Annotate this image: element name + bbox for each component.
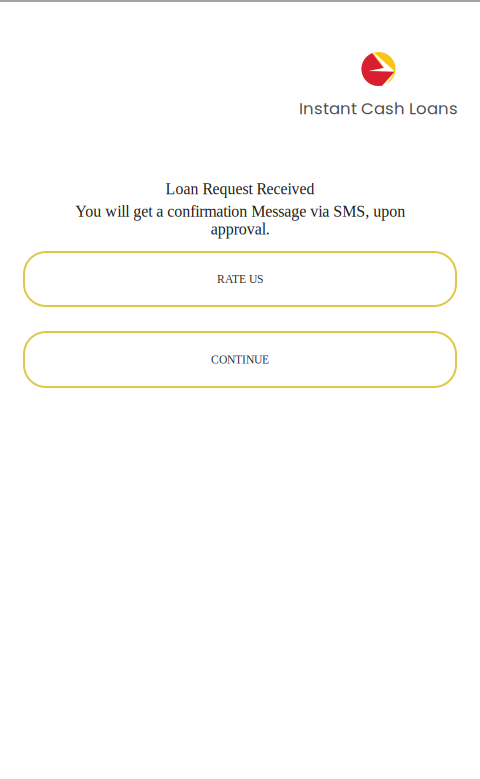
button[interactable]: CONTINUE: [24, 332, 456, 387]
staticText: RATE US: [217, 273, 263, 285]
staticText: You will get a confirmation Message via …: [75, 203, 405, 238]
staticText: Loan Request Received: [165, 180, 314, 197]
staticText: CONTINUE: [211, 353, 269, 366]
staticText: Instant Cash Loans: [299, 97, 458, 120]
button[interactable]: RATE US: [24, 252, 456, 306]
